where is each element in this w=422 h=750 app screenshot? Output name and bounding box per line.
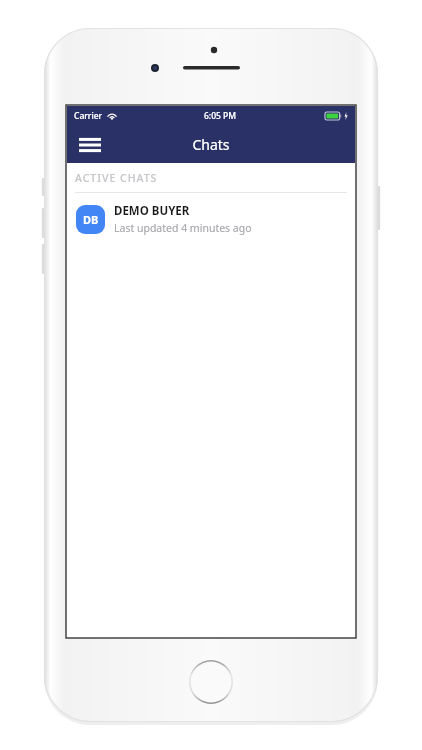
staticText: Last updated 4 minutes ago [114, 221, 252, 235]
staticText: Carrier [74, 110, 103, 122]
staticText: 6:05 PM [204, 110, 237, 122]
button[interactable]: DB [67, 193, 355, 245]
staticText: Chats [67, 135, 355, 154]
button[interactable]: Home [189, 660, 233, 704]
staticText: DB [83, 212, 99, 227]
staticText: DEMO BUYER [114, 203, 190, 219]
staticText: ACTIVE CHATS [75, 171, 158, 185]
button[interactable]: Menu [73, 129, 107, 161]
